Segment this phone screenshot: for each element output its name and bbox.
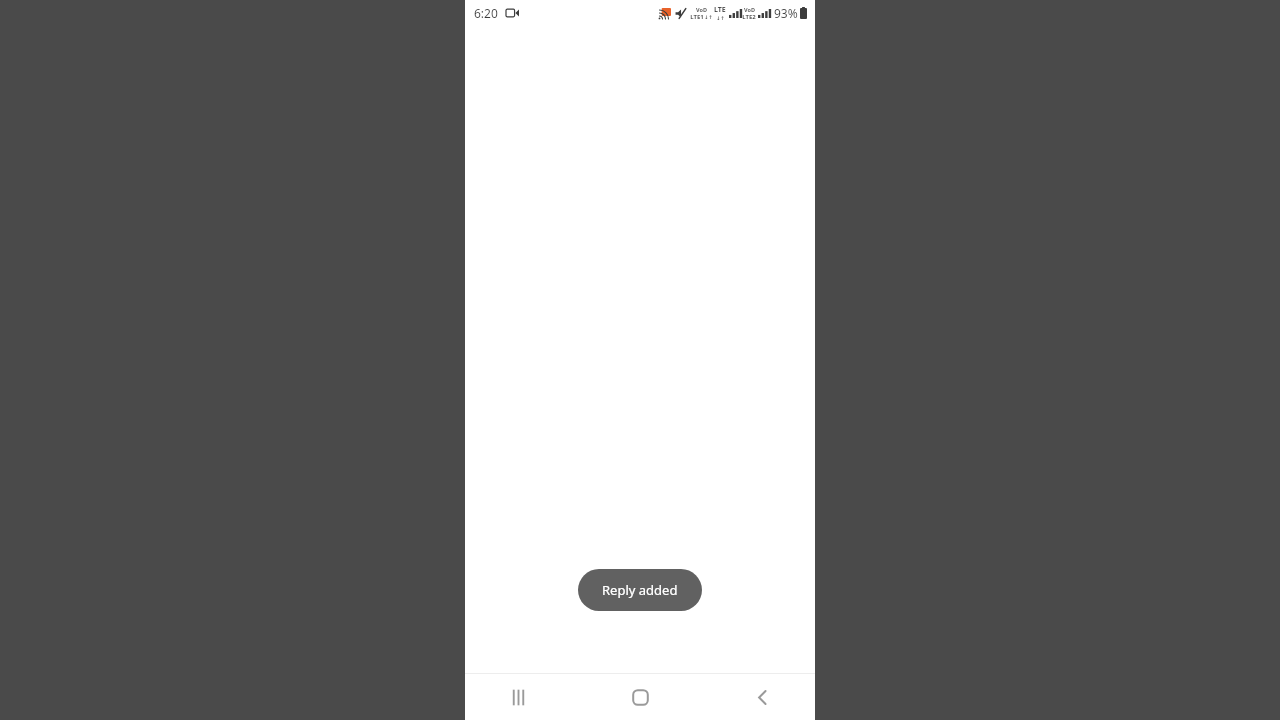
staticText: LTE2 — [742, 13, 756, 21]
staticText: LTE1 — [690, 13, 704, 21]
button[interactable]: Recents — [494, 674, 542, 720]
button[interactable]: Home — [616, 674, 664, 720]
staticText: LTE — [714, 5, 726, 15]
staticText: 6:20 — [474, 5, 498, 21]
staticText: VoD — [744, 6, 755, 13]
staticText: ↓↑ — [704, 14, 713, 20]
button[interactable]: Back — [738, 674, 786, 720]
button[interactable]: Reply added — [578, 569, 702, 611]
staticText: Reply added — [602, 581, 678, 599]
staticText: ↓↑ — [716, 15, 725, 21]
staticText: VoD — [696, 6, 707, 13]
staticText: 93% — [774, 5, 798, 21]
